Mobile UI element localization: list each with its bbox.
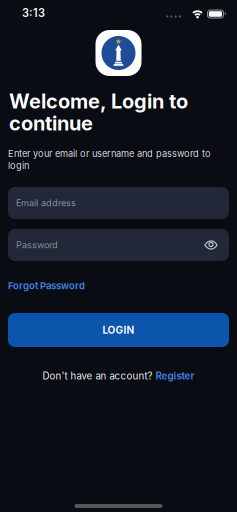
staticText: LOGIN bbox=[102, 324, 134, 336]
button[interactable]: Register bbox=[155, 370, 194, 382]
button[interactable]: Password bbox=[8, 229, 229, 261]
staticText: Don't have an account? bbox=[42, 370, 152, 382]
staticText: Enter your email or username and passwor… bbox=[8, 148, 211, 171]
staticText: Password bbox=[16, 239, 58, 250]
staticText: Email address bbox=[16, 197, 76, 208]
button[interactable]: LOGIN bbox=[8, 313, 229, 347]
button[interactable]: Email address bbox=[8, 187, 229, 219]
staticText: Forgot Password bbox=[8, 280, 85, 291]
staticText: 3:13 bbox=[22, 6, 45, 20]
button[interactable]: Forgot Password bbox=[8, 280, 85, 291]
button[interactable]: Show password bbox=[204, 239, 229, 250]
staticText: Welcome, Login to continue bbox=[9, 89, 188, 135]
staticText: Register bbox=[155, 370, 194, 382]
